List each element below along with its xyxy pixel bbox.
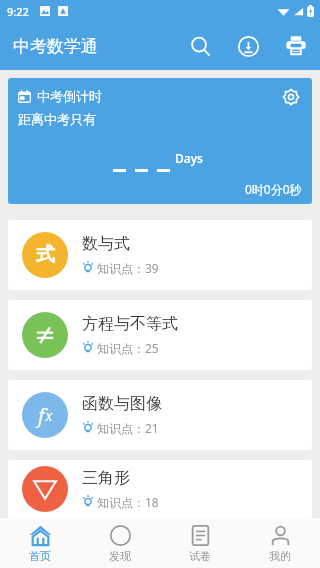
button[interactable]: 三角形 xyxy=(8,460,312,518)
button[interactable]: 发现 xyxy=(80,518,160,568)
staticText: f xyxy=(38,402,45,429)
staticText: 数与式 xyxy=(82,234,130,254)
button[interactable]: 中考倒计时 xyxy=(8,78,312,204)
button[interactable]: Download xyxy=(224,22,272,70)
staticText: 试卷 xyxy=(189,549,211,563)
staticText: Days xyxy=(175,150,203,166)
staticText: 知识点：21 xyxy=(97,420,159,436)
button[interactable]: Print xyxy=(272,22,320,70)
staticText: 三角形 xyxy=(82,468,130,488)
staticText: 知识点：39 xyxy=(97,260,159,276)
staticText: 方程与不等式 xyxy=(82,314,178,334)
staticText: x xyxy=(45,406,53,425)
staticText: 我的 xyxy=(269,549,291,563)
button[interactable]: 式 xyxy=(8,220,312,290)
button[interactable]: Settings xyxy=(278,84,304,110)
button[interactable]: 试卷 xyxy=(160,518,240,568)
button[interactable]: 首页 xyxy=(0,518,80,568)
staticText: 发现 xyxy=(109,549,131,563)
staticText: 0时0分0秒 xyxy=(245,181,302,197)
staticText: 9:22 xyxy=(7,4,29,19)
staticText: 知识点：18 xyxy=(97,494,159,510)
staticText: 中考倒计时 xyxy=(37,88,102,104)
staticText: 首页 xyxy=(29,549,51,563)
button[interactable]: Search xyxy=(176,22,224,70)
staticText: 知识点：25 xyxy=(97,340,159,356)
staticText: 距离中考只有 xyxy=(18,111,96,127)
button[interactable]: 方程与不等式 xyxy=(8,300,312,370)
staticText: 函数与图像 xyxy=(82,394,162,414)
button[interactable]: 我的 xyxy=(240,518,320,568)
button[interactable]: f xyxy=(8,380,312,450)
staticText: 式 xyxy=(36,243,55,267)
staticText: 中考数学通 xyxy=(13,36,98,57)
